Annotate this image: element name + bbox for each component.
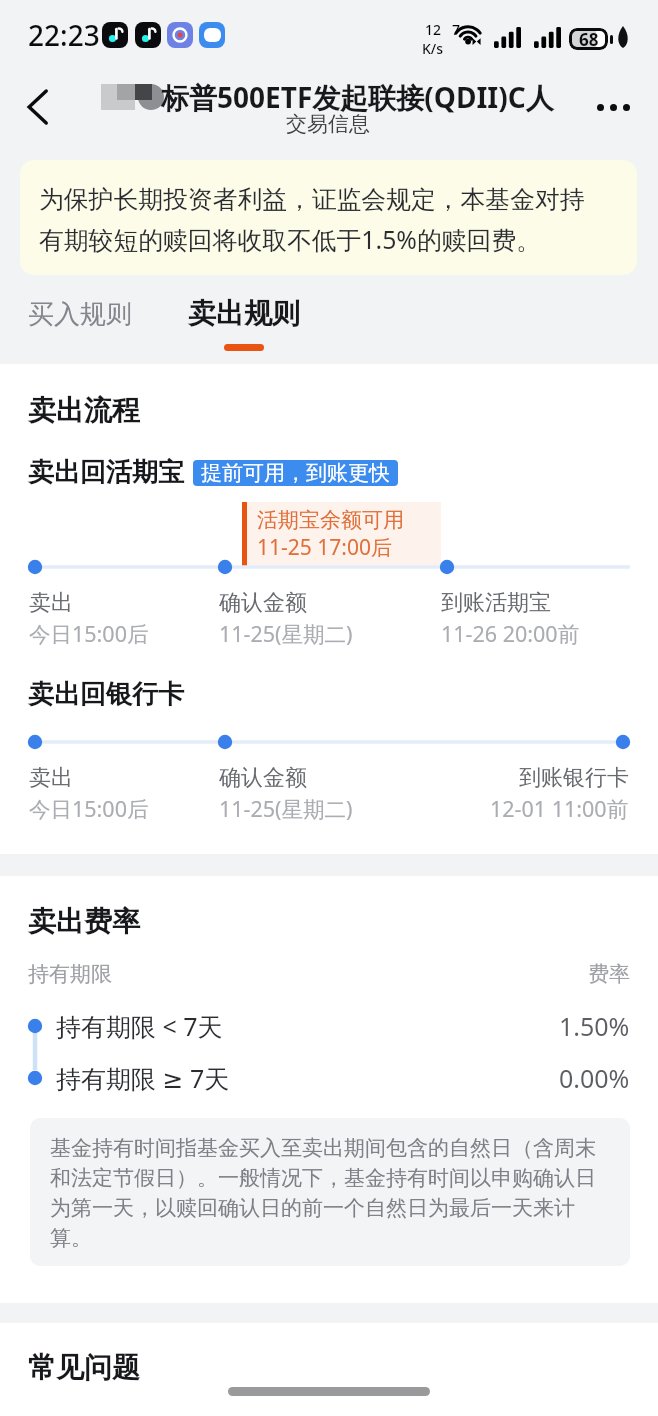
staticText: K/s — [422, 39, 444, 58]
button[interactable]: 卖出规则 — [188, 296, 300, 351]
staticText: 11-25 17:00后 — [257, 533, 392, 562]
button[interactable]: 买入规则 — [28, 298, 138, 331]
staticText: 1.50% — [559, 1009, 630, 1043]
staticText: 卖出流程 — [28, 393, 140, 428]
staticText: 11-25(星期二) — [219, 794, 353, 823]
staticText: 12 — [425, 20, 442, 39]
staticText: 12-01 11:00前 — [490, 794, 629, 823]
staticText: 68 — [579, 28, 599, 50]
button[interactable]: 持有期限 ≥ 7天 — [0, 1055, 658, 1100]
staticText: 卖出费率 — [28, 904, 140, 939]
staticText: 费率 — [588, 961, 630, 987]
staticText: 11-26 20:00前 — [441, 619, 580, 648]
staticText: 到账活期宝 — [441, 589, 551, 617]
staticText: 标普500ETF发起联接(QDII)C人 — [161, 78, 554, 116]
button[interactable]: 持有期限 < 7天 — [0, 1003, 658, 1048]
staticText: 今日15:00后 — [29, 794, 149, 823]
staticText: 持有期限 ≥ 7天 — [56, 1061, 230, 1095]
staticText: 到账银行卡 — [519, 764, 629, 792]
staticText: 卖出回银行卡 — [28, 678, 184, 711]
staticText: 今日15:00后 — [29, 619, 149, 648]
staticText: 常见问题 — [28, 1350, 140, 1385]
staticText: 交易信息 — [286, 111, 370, 137]
staticText: 7 — [452, 20, 461, 39]
staticText: 持有期限 < 7天 — [56, 1009, 223, 1043]
button[interactable]: Back — [8, 78, 66, 136]
button[interactable]: More options — [584, 78, 642, 136]
staticText: 提前可用，到账更快 — [201, 460, 390, 486]
staticText: 11-25(星期二) — [219, 619, 353, 648]
staticText: 确认金额 — [219, 589, 307, 617]
staticText: 卖出 — [29, 589, 73, 617]
staticText: 卖出 — [29, 764, 73, 792]
staticText: 卖出规则 — [188, 296, 300, 331]
staticText: 买入规则 — [28, 298, 132, 331]
staticText: 基金持有时间指基金买入至卖出期间包含的自然日（含周末和法定节假日）。一般情况下，… — [50, 1135, 610, 1252]
staticText: 为保护长期投资者利益，证监会规定，本基金对持有期较短的赎回将收取不低于1.5%的… — [39, 184, 599, 257]
staticText: 活期宝余额可用 — [257, 507, 404, 533]
staticText: 持有期限 — [28, 961, 112, 987]
staticText: 确认金额 — [219, 764, 307, 792]
staticText: 22:23 — [28, 16, 100, 54]
staticText: 卖出回活期宝 — [28, 456, 184, 489]
staticText: 0.00% — [559, 1061, 630, 1095]
